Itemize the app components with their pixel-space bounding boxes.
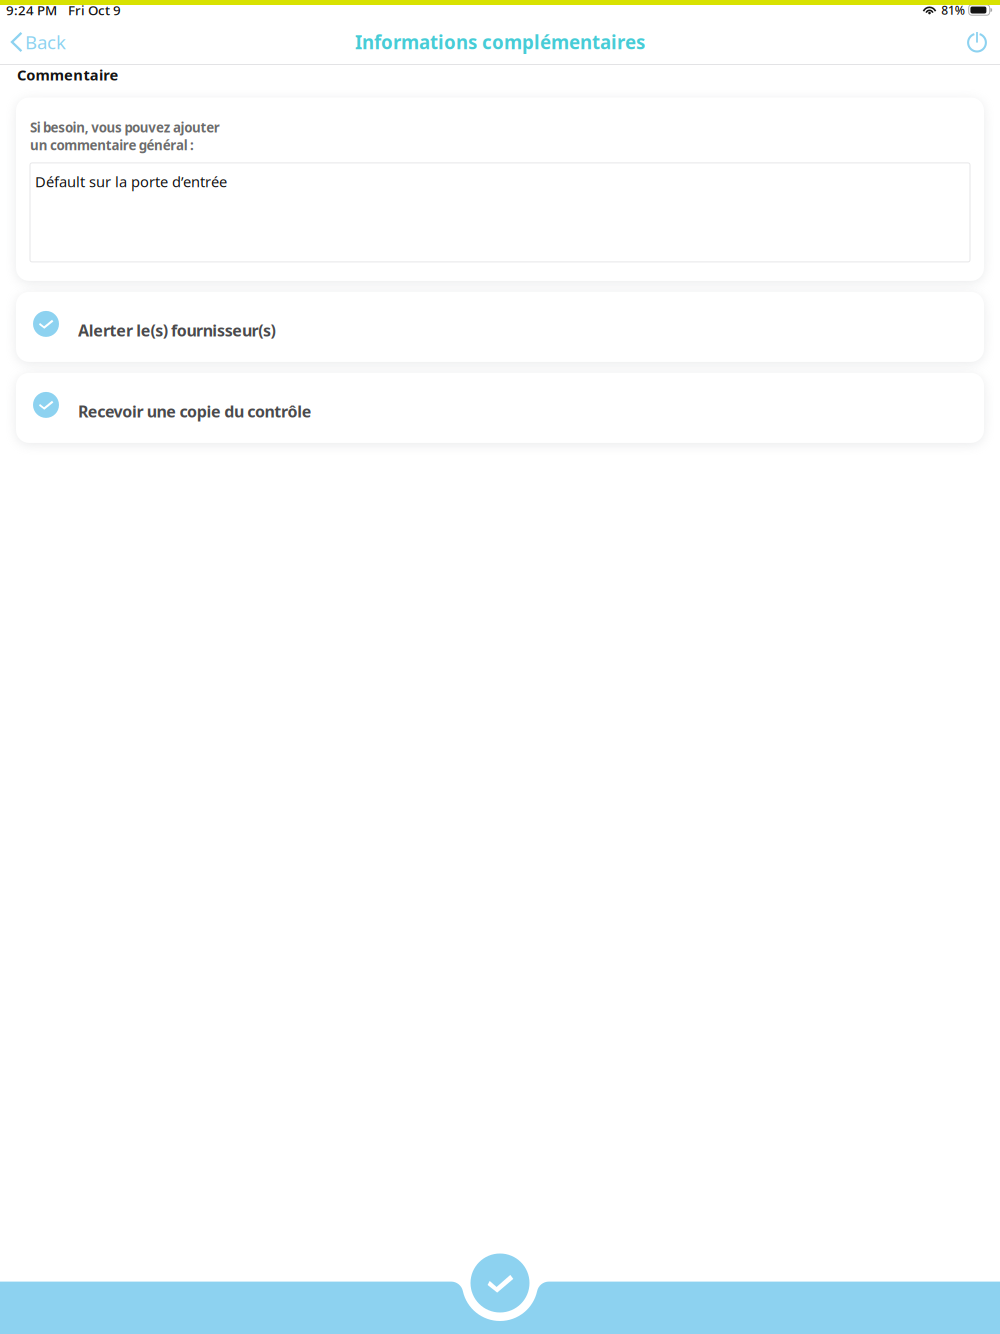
button[interactable]: Recevoir une copie du contrôle bbox=[16, 373, 984, 443]
staticText: 9:24 PM bbox=[6, 1, 57, 19]
staticText: 81% bbox=[941, 2, 965, 18]
staticText: Commentaire bbox=[17, 65, 118, 84]
staticText: un commentaire général : bbox=[30, 136, 194, 154]
button[interactable]: Back bbox=[0, 20, 78, 64]
staticText: Fri Oct 9 bbox=[68, 1, 121, 19]
button[interactable]: Alerter le(s) fournisseur(s) bbox=[16, 292, 984, 362]
button[interactable]: Power bbox=[955, 20, 1000, 64]
staticText: Défault sur la porte d’entrée bbox=[35, 172, 227, 191]
staticText: Recevoir une copie du contrôle bbox=[78, 401, 312, 422]
staticText: Si besoin, vous pouvez ajouter bbox=[30, 118, 220, 136]
button[interactable]: Valider bbox=[462, 1244, 538, 1312]
staticText: Alerter le(s) fournisseur(s) bbox=[78, 320, 276, 341]
staticText: Informations complémentaires bbox=[355, 30, 645, 54]
staticText: Back bbox=[25, 30, 66, 54]
